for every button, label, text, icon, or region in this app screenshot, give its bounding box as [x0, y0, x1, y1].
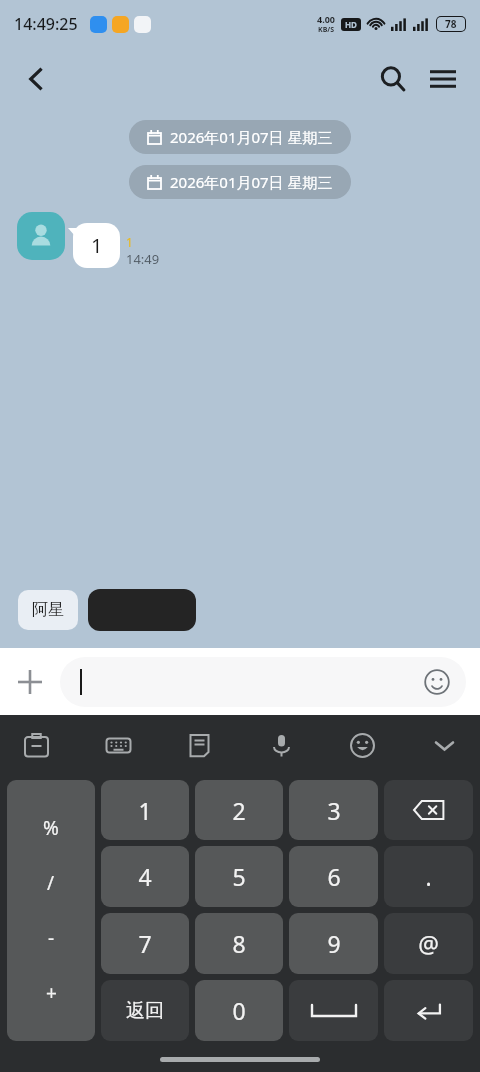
staticText: +	[46, 980, 57, 1006]
staticText: 1	[138, 795, 152, 826]
staticText: 9	[327, 928, 341, 959]
button[interactable]: 9	[289, 913, 378, 974]
button[interactable]: Enter	[384, 980, 473, 1041]
button[interactable]: 2026年01月07日 星期三	[129, 165, 351, 199]
staticText: 6	[327, 861, 341, 892]
button[interactable]: 1	[101, 780, 189, 840]
button[interactable]: Emoji	[340, 723, 384, 767]
button[interactable]: Keyboard	[96, 723, 140, 767]
button[interactable]: 2026年01月07日 星期三	[129, 120, 351, 154]
staticText: 14:49	[126, 250, 160, 268]
staticText: 7	[138, 928, 152, 959]
button[interactable]: Emoji	[422, 667, 452, 697]
staticText: %	[43, 815, 59, 841]
button[interactable]: 3	[289, 780, 378, 840]
staticText: .	[425, 861, 432, 892]
button[interactable]: Emoji	[60, 657, 466, 707]
button[interactable]: Back	[12, 55, 60, 103]
button[interactable]: 返回	[101, 980, 189, 1041]
staticText: KB/S	[318, 25, 335, 35]
button[interactable]: Quick reply	[88, 589, 196, 631]
button[interactable]: 0	[195, 980, 283, 1041]
button[interactable]: Space	[289, 980, 378, 1041]
staticText: 0	[232, 995, 246, 1026]
button[interactable]: Hide keyboard	[422, 723, 466, 767]
staticText: @	[418, 928, 439, 959]
button[interactable]: @	[384, 913, 473, 974]
staticText: 返回	[126, 999, 164, 1023]
button[interactable]: 1	[73, 223, 120, 268]
button[interactable]: 阿星	[18, 590, 78, 630]
button[interactable]: Clipboard	[14, 723, 58, 767]
staticText: /	[47, 870, 55, 896]
staticText: 4.00	[317, 13, 335, 25]
button[interactable]: 2	[195, 780, 283, 840]
button[interactable]: 7	[101, 913, 189, 974]
staticText: 4	[138, 861, 152, 892]
staticText: 3	[327, 795, 341, 826]
button[interactable]: .	[384, 846, 473, 907]
button[interactable]: 5	[195, 846, 283, 907]
button[interactable]: Add	[0, 652, 60, 712]
staticText: 2026年01月07日 星期三	[170, 172, 333, 192]
button[interactable]: Search	[370, 56, 416, 102]
staticText: 2026年01月07日 星期三	[170, 127, 333, 147]
staticText: 8	[232, 928, 246, 959]
staticText: 1	[126, 234, 133, 250]
button[interactable]: %	[7, 780, 95, 1041]
staticText: 阿星	[32, 600, 64, 620]
staticText: HD	[345, 19, 357, 30]
button[interactable]: Avatar	[17, 212, 65, 260]
button[interactable]: Menu	[420, 56, 466, 102]
staticText: 14:49:25	[14, 13, 78, 35]
button[interactable]: Backspace	[384, 780, 473, 840]
staticText: 78	[445, 17, 457, 31]
button[interactable]: Voice input	[259, 723, 303, 767]
staticText: 2	[232, 795, 246, 826]
button[interactable]: 4	[101, 846, 189, 907]
staticText: 1	[91, 232, 103, 259]
staticText: 5	[232, 861, 246, 892]
button[interactable]: 8	[195, 913, 283, 974]
button[interactable]: 6	[289, 846, 378, 907]
button[interactable]: Notes	[177, 723, 221, 767]
staticText: -	[48, 925, 55, 951]
